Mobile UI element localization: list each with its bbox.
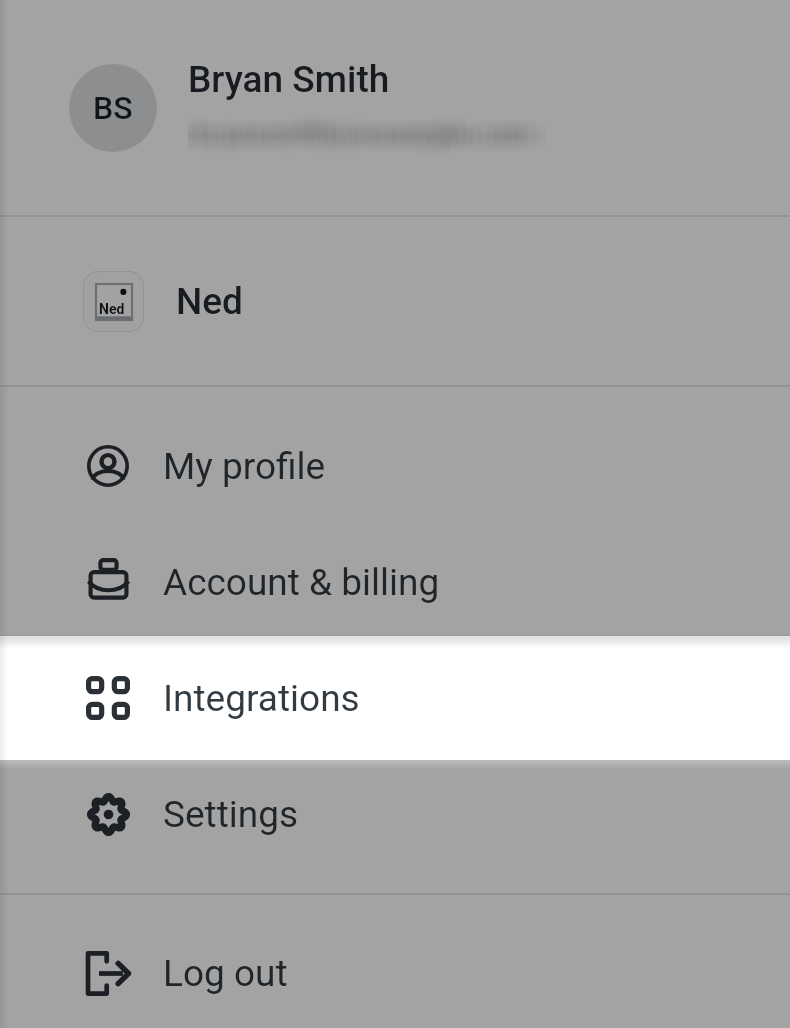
staticText: bryansmith@example.com — [181, 118, 527, 152]
staticText: bryansmith@example.com — [176, 121, 522, 155]
staticText: bryansmith@example.com — [185, 112, 531, 146]
staticText: bryansmith@example.com — [181, 108, 527, 142]
staticText: bryansmith@example.com — [193, 125, 539, 159]
staticText: bryansmith@example.com — [204, 126, 550, 160]
staticText: bryansmith@example.com — [202, 115, 548, 149]
staticText: bryansmith@example.com — [196, 120, 542, 154]
staticText: bryansmith@example.com — [194, 117, 540, 151]
staticText: bryansmith@example.com — [175, 117, 521, 151]
staticText: bryansmith@example.com — [197, 117, 543, 151]
staticText: bryansmith@example.com — [184, 117, 530, 151]
staticText: Integrations — [163, 677, 360, 720]
staticText: bryansmith@example.com — [174, 112, 520, 146]
staticText: bryansmith@example.com — [173, 120, 519, 154]
staticText: bryansmith@example.com — [191, 117, 537, 151]
staticText: bryansmith@example.com — [204, 109, 550, 143]
staticText: bryansmith@example.com — [188, 121, 534, 155]
staticText: bryansmith@example.com — [187, 125, 533, 159]
staticText: bryansmith@example.com — [182, 118, 528, 152]
staticText: bryansmith@example.com — [175, 109, 521, 143]
staticText: bryansmith@example.com — [172, 114, 518, 148]
staticText: bryansmith@example.com — [184, 111, 530, 145]
button[interactable]: Account & billing — [0, 524, 790, 640]
button[interactable]: Settings — [0, 756, 790, 872]
staticText: bryansmith@example.com — [200, 123, 546, 157]
staticText: bryansmith@example.com — [202, 111, 548, 145]
staticText: bryansmith@example.com — [193, 113, 539, 147]
staticText: bryansmith@example.com — [182, 112, 528, 146]
staticText: bryansmith@example.com — [184, 125, 530, 159]
staticText: bryansmith@example.com — [197, 126, 543, 160]
staticText: bryansmith@example.com — [202, 109, 548, 143]
staticText: bryansmith@example.com — [190, 124, 536, 158]
staticText: bryansmith@example.com — [186, 110, 532, 144]
staticText: bryansmith@example.com — [193, 119, 539, 153]
staticText: bryansmith@example.com — [189, 113, 535, 147]
staticText: bryansmith@example.com — [194, 114, 540, 148]
staticText: bryansmith@example.com — [175, 110, 521, 144]
staticText: bryansmith@example.com — [199, 109, 545, 143]
staticText: bryansmith@example.com — [194, 113, 540, 147]
staticText: Account & billing — [163, 561, 440, 604]
staticText: bryansmith@example.com — [197, 114, 543, 148]
staticText: bryansmith@example.com — [202, 113, 548, 147]
staticText: bryansmith@example.com — [175, 115, 521, 149]
staticText: bryansmith@example.com — [180, 115, 526, 149]
staticText: bryansmith@example.com — [181, 112, 527, 146]
staticText: bryansmith@example.com — [190, 126, 536, 160]
staticText: bryansmith@example.com — [175, 120, 521, 154]
staticText: bryansmith@example.com — [195, 125, 541, 159]
staticText: bryansmith@example.com — [192, 115, 538, 149]
staticText: bryansmith@example.com — [181, 121, 527, 155]
staticText: bryansmith@example.com — [203, 115, 549, 149]
button[interactable]: My profile — [0, 408, 790, 524]
staticText: bryansmith@example.com — [196, 115, 542, 149]
staticText: bryansmith@example.com — [190, 121, 536, 155]
staticText: bryansmith@example.com — [176, 112, 522, 146]
staticText: bryansmith@example.com — [173, 116, 519, 150]
staticText: bryansmith@example.com — [181, 114, 527, 148]
staticText: bryansmith@example.com — [202, 126, 548, 160]
staticText: bryansmith@example.com — [180, 109, 526, 143]
staticText: bryansmith@example.com — [193, 118, 539, 152]
staticText: bryansmith@example.com — [189, 120, 535, 154]
staticText: bryansmith@example.com — [178, 122, 524, 156]
staticText: bryansmith@example.com — [203, 118, 549, 152]
staticText: bryansmith@example.com — [199, 117, 545, 151]
staticText: bryansmith@example.com — [188, 115, 534, 149]
button[interactable]: Integrations — [0, 640, 790, 756]
staticText: bryansmith@example.com — [182, 125, 528, 159]
staticText: bryansmith@example.com — [188, 108, 534, 142]
staticText: bryansmith@example.com — [190, 118, 536, 152]
staticText: bryansmith@example.com — [175, 116, 521, 150]
staticText: bryansmith@example.com — [200, 124, 546, 158]
staticText: bryansmith@example.com — [174, 116, 520, 150]
staticText: bryansmith@example.com — [193, 109, 539, 143]
staticText: bryansmith@example.com — [199, 115, 545, 149]
button[interactable]: BS — [0, 0, 790, 215]
staticText: bryansmith@example.com — [201, 121, 547, 155]
staticText: bryansmith@example.com — [179, 125, 525, 159]
staticText: bryansmith@example.com — [196, 110, 542, 144]
staticText: bryansmith@example.com — [189, 125, 535, 159]
button[interactable]: Log out — [0, 918, 790, 1028]
staticText: bryansmith@example.com — [196, 111, 542, 145]
staticText: bryansmith@example.com — [197, 113, 543, 147]
staticText: bryansmith@example.com — [195, 112, 541, 146]
staticText: bryansmith@example.com — [182, 111, 528, 145]
staticText: bryansmith@example.com — [181, 124, 527, 158]
staticText: bryansmith@example.com — [187, 115, 533, 149]
staticText: bryansmith@example.com — [197, 116, 543, 150]
staticText: bryansmith@example.com — [191, 110, 537, 144]
staticText: bryansmith@example.com — [177, 121, 523, 155]
staticText: bryansmith@example.com — [180, 113, 526, 147]
staticText: bryansmith@example.com — [181, 120, 527, 154]
staticText: bryansmith@example.com — [201, 125, 547, 159]
staticText: bryansmith@example.com — [194, 112, 540, 146]
button[interactable]: Ned — [0, 217, 790, 385]
staticText: bryansmith@example.com — [177, 118, 523, 152]
staticText: bryansmith@example.com — [185, 114, 531, 148]
staticText: bryansmith@example.com — [199, 120, 545, 154]
staticText: bryansmith@example.com — [187, 122, 533, 156]
staticText: bryansmith@example.com — [194, 125, 540, 159]
